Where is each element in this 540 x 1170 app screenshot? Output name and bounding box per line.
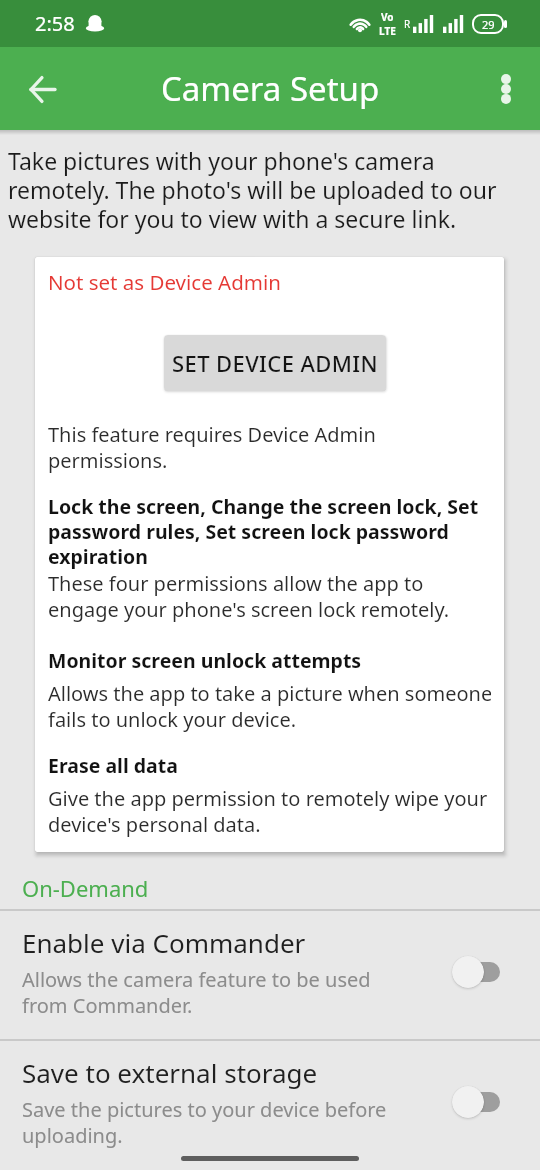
staticText: 29 — [482, 17, 495, 32]
button[interactable]: Save to external storage — [0, 1041, 540, 1169]
staticText: Allows the app to take a picture when so… — [48, 680, 491, 732]
staticText: Save the pictures to your device before … — [22, 1096, 387, 1148]
staticText: Enable via Commander — [22, 925, 306, 960]
staticText: Erase all data — [48, 752, 178, 779]
staticText: SET DEVICE ADMIN — [172, 348, 378, 378]
button[interactable] — [18, 65, 66, 113]
button[interactable]: Enable via Commander — [0, 911, 540, 1039]
staticText: Allows the camera feature to be used fro… — [22, 966, 371, 1018]
staticText: Take pictures with your phone's camera r… — [8, 145, 497, 235]
staticText: Monitor screen unlock attempts — [48, 647, 362, 674]
staticText: Lock the screen, Change the screen lock,… — [48, 493, 479, 569]
staticText: These four permissions allow the app to … — [48, 570, 450, 622]
staticText: Camera Setup — [161, 66, 380, 111]
staticText: R — [404, 17, 411, 31]
staticText: On-Demand — [22, 873, 149, 903]
staticText: This feature requires Device Admin permi… — [48, 421, 376, 473]
button[interactable] — [486, 69, 526, 109]
button[interactable]: SET DEVICE ADMIN — [164, 335, 386, 391]
button[interactable] — [452, 1083, 500, 1121]
staticText: Not set as Device Admin — [48, 268, 281, 296]
staticText: Vo — [381, 10, 394, 24]
staticText: Give the app permission to remotely wipe… — [48, 785, 488, 837]
staticText: 2:58 — [35, 10, 75, 37]
staticText: LTE — [379, 24, 396, 38]
button[interactable] — [452, 953, 500, 991]
staticText: Save to external storage — [22, 1055, 318, 1090]
